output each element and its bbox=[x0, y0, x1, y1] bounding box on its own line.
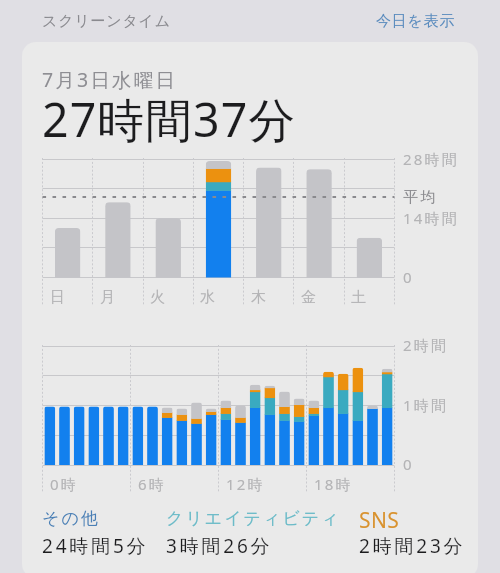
staticText: 18時 bbox=[314, 474, 353, 494]
staticText: 7月3日水曜日 bbox=[42, 66, 178, 93]
staticText: 土 bbox=[351, 288, 369, 307]
staticText: 今日を表示 bbox=[376, 12, 456, 31]
staticText: 3時間26分 bbox=[166, 533, 273, 559]
staticText: 火 bbox=[150, 288, 168, 307]
staticText: 平均 bbox=[403, 188, 438, 207]
staticText: 2時間 bbox=[403, 335, 449, 355]
button[interactable]: 今日を表示 bbox=[368, 4, 464, 39]
staticText: スクリーンタイム bbox=[42, 12, 171, 31]
staticText: 6時 bbox=[138, 474, 166, 494]
staticText: 1時間 bbox=[403, 395, 449, 415]
staticText: クリエイティビティ bbox=[166, 508, 341, 529]
staticText: SNS bbox=[359, 506, 400, 535]
button[interactable]: クリエイティビティ bbox=[160, 500, 347, 559]
staticText: 水 bbox=[200, 288, 218, 307]
staticText: 27時間37分 bbox=[42, 87, 297, 151]
staticText: 金 bbox=[301, 288, 319, 307]
staticText: 2時間23分 bbox=[359, 533, 466, 559]
staticText: 日 bbox=[50, 288, 68, 307]
staticText: 0 bbox=[403, 454, 414, 474]
staticText: 0 bbox=[403, 267, 414, 287]
staticText: 28時間 bbox=[403, 149, 459, 169]
button[interactable]: スクリーンタイム bbox=[34, 4, 179, 39]
staticText: 0時 bbox=[50, 474, 78, 494]
staticText: 月 bbox=[100, 288, 118, 307]
staticText: 12時 bbox=[226, 474, 265, 494]
button[interactable]: SNS bbox=[353, 500, 472, 567]
staticText: その他 bbox=[42, 508, 100, 529]
button[interactable]: その他 bbox=[36, 500, 155, 559]
staticText: 24時間5分 bbox=[42, 533, 149, 559]
staticText: 木 bbox=[251, 288, 269, 307]
button[interactable]: 7月3日水曜日 bbox=[22, 42, 478, 573]
staticText: 14時間 bbox=[403, 208, 459, 228]
